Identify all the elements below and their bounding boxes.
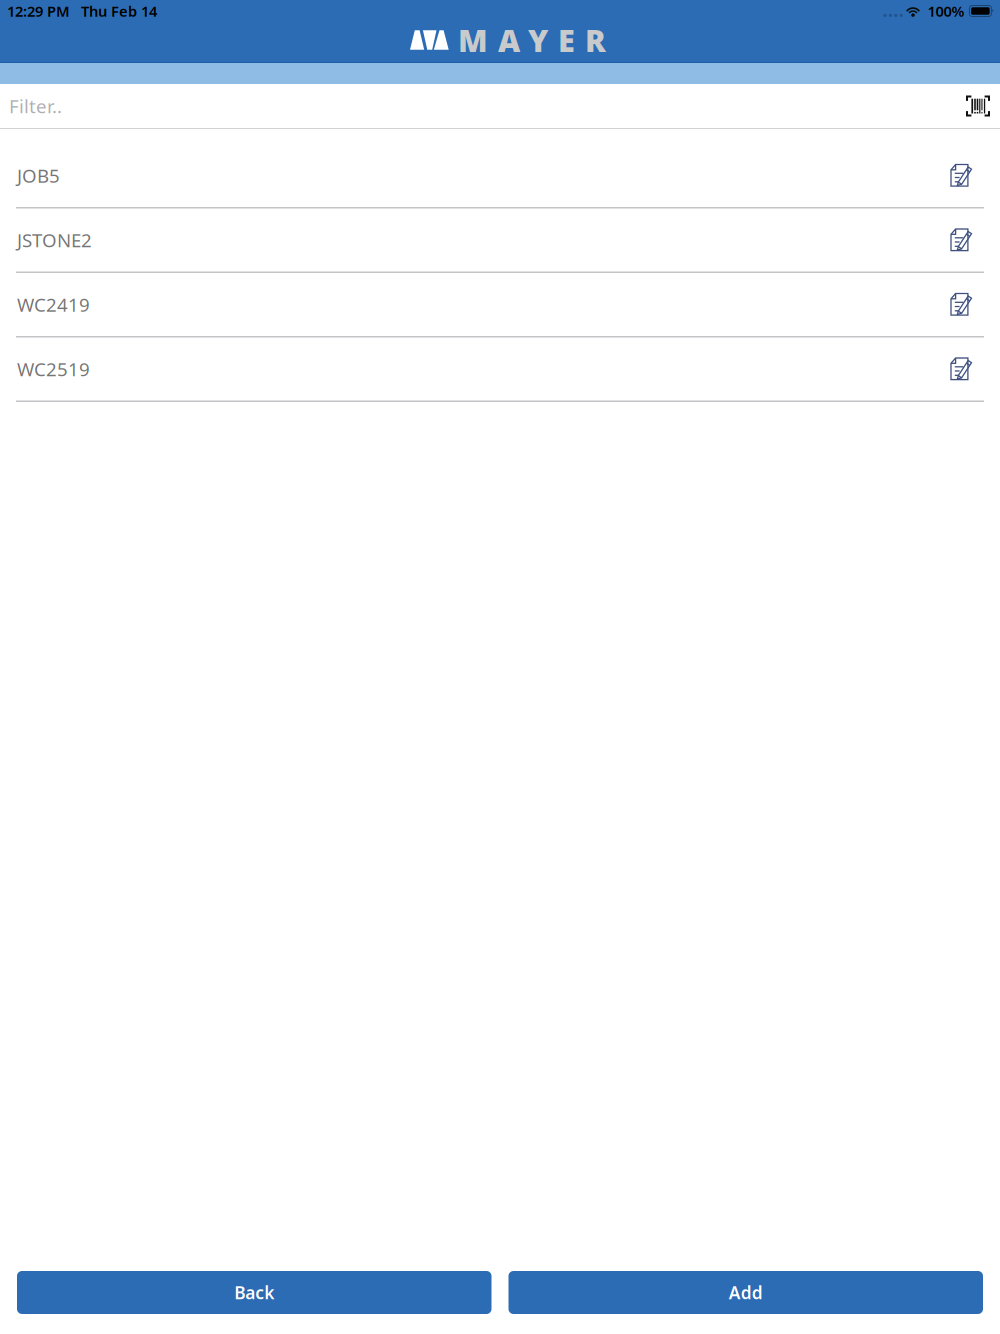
staticText: JSTONE2 [17,228,92,252]
button[interactable]: Scan barcode [956,85,1000,126]
button[interactable]: JOB5 [0,144,937,207]
staticText: 12:29 PM [7,1,70,21]
button[interactable]: JSTONE2 [0,208,937,271]
button[interactable]: WC2419 [0,273,937,336]
button[interactable]: Add [508,1271,983,1314]
button[interactable]: Back [17,1271,491,1314]
staticText: Thu Feb 14 [81,1,157,21]
staticText: 100% [927,1,964,21]
staticText: MAYER [458,20,606,60]
button[interactable]: Edit JSTONE2 [937,208,1000,271]
staticText: JOB5 [17,163,60,188]
staticText: Add [729,1281,763,1304]
button[interactable]: Edit WC2519 [937,337,1000,400]
button[interactable]: WC2519 [0,337,937,400]
staticText: WC2419 [17,292,90,317]
staticText: Filter.. [9,94,62,118]
staticText: Back [234,1281,274,1304]
button[interactable]: Edit WC2419 [937,273,1000,336]
staticText: WC2519 [17,357,90,381]
button[interactable]: Edit JOB5 [937,144,1000,207]
